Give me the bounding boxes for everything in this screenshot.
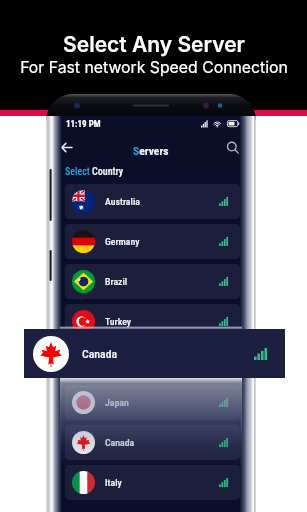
button[interactable]: Japan — [65, 385, 240, 420]
staticText: For Fast network Speed Connection — [20, 58, 288, 77]
button[interactable]: Australia — [65, 184, 240, 219]
button[interactable]: Canada — [24, 329, 285, 378]
staticText: Select Any Server — [63, 32, 245, 57]
staticText: Canada — [82, 347, 118, 361]
staticText: 11:19 PM — [66, 119, 101, 130]
button[interactable]: Back — [56, 137, 76, 157]
staticText: Japan — [105, 397, 129, 408]
button[interactable]: Canada — [65, 345, 240, 380]
staticText: Canada — [105, 437, 135, 448]
staticText: Canada — [105, 357, 135, 368]
button[interactable]: Brazil — [65, 264, 240, 299]
staticText: Germany — [105, 236, 140, 247]
button[interactable]: Germany — [65, 224, 240, 259]
staticText: Brazil — [105, 276, 128, 287]
staticText: Turkey — [105, 316, 132, 327]
button[interactable]: Italy — [65, 465, 240, 500]
button[interactable]: Search — [223, 138, 243, 158]
button[interactable]: Turkey — [65, 304, 240, 339]
staticText: Australia — [105, 196, 140, 207]
staticText: Select Country — [65, 166, 124, 178]
button[interactable]: Canada — [65, 425, 240, 460]
staticText: Italy — [105, 477, 122, 488]
staticText: Servers — [133, 144, 169, 158]
